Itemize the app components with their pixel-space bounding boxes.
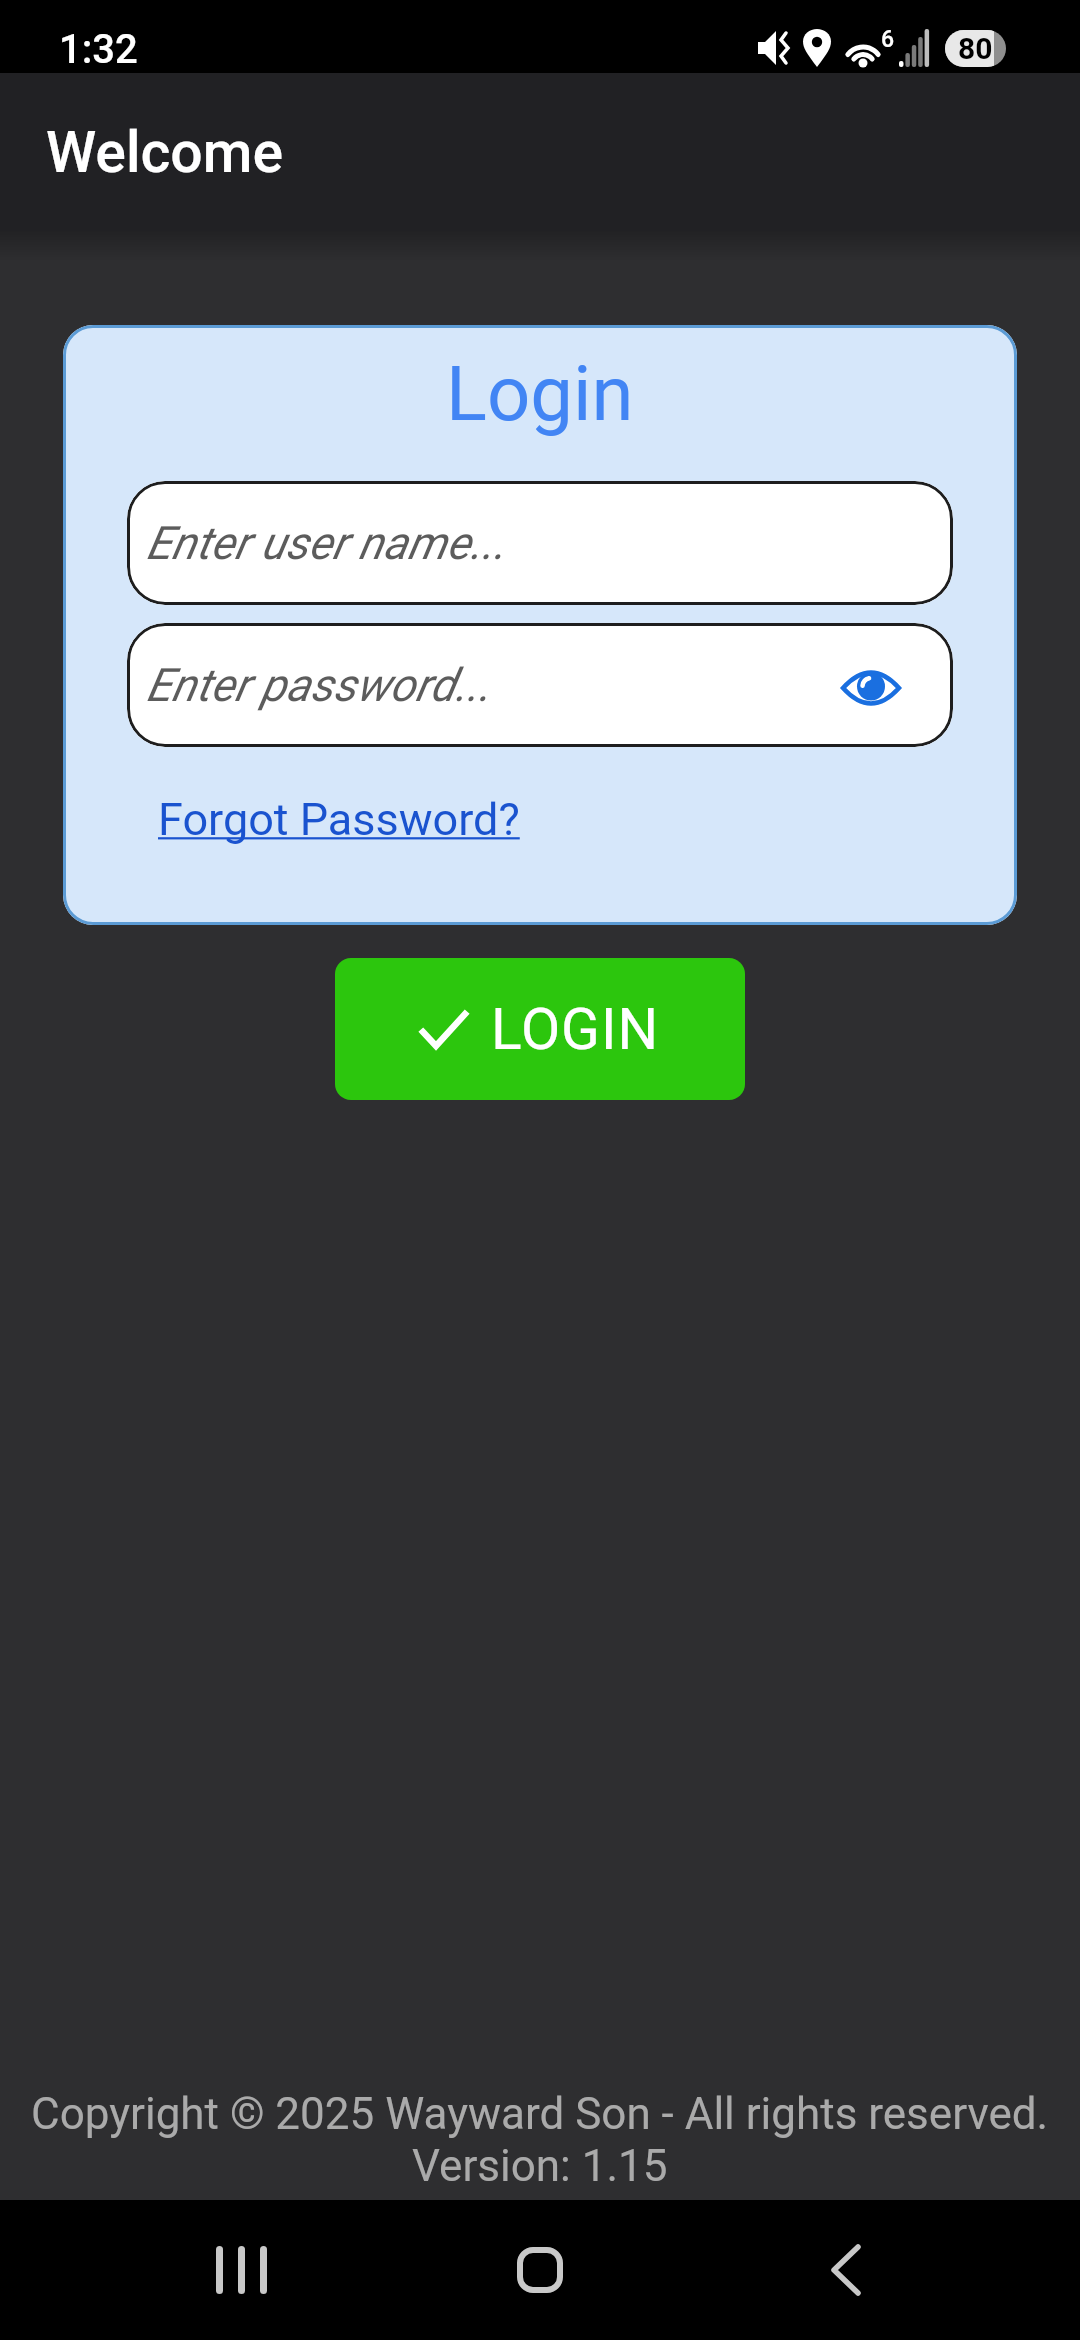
staticText: 6 [881,26,895,53]
button[interactable] [830,2245,860,2295]
staticText: Enter user name... [146,516,506,570]
staticText: Copyright © 2025 Wayward Son - All right… [31,2088,1049,2140]
button[interactable]: LOGIN [335,958,745,1100]
staticText: Welcome [46,119,284,186]
staticText: Login [446,349,634,438]
staticText: 80 [958,31,993,66]
staticText: LOGIN [491,996,660,1063]
button[interactable] [517,2247,563,2293]
staticText: Version: 1.15 [412,2140,668,2192]
staticText: Enter password... [146,658,491,712]
staticText: 1:32 [59,26,138,73]
button[interactable]: Enter password... [127,623,953,747]
button[interactable] [216,2246,267,2294]
button[interactable]: Forgot Password? [158,793,520,846]
button[interactable] [843,669,899,707]
button[interactable]: Enter user name... [127,481,953,605]
